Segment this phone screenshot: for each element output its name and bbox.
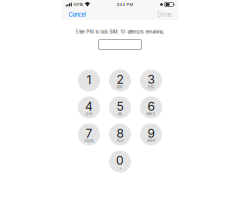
button[interactable]: 9 [140,123,162,145]
staticText: 4 [85,99,93,113]
staticText: JKL [117,112,123,116]
staticText: + [119,166,121,170]
staticText: 6 [147,99,154,113]
staticText: 0 [116,153,124,167]
button[interactable]: Cancel [64,9,89,20]
staticText: GHI [85,112,92,116]
staticText: 5 [116,99,123,113]
button[interactable]: 8 [109,123,131,145]
staticText: PQRS [84,139,93,143]
button[interactable]: 4 [78,96,100,118]
staticText: Cancel [68,11,85,18]
button[interactable]: 1 [78,69,100,91]
staticText: WXYZ [146,139,155,143]
staticText: 7 [85,126,92,140]
button[interactable]: 6 [140,96,162,118]
staticText: TUV [116,139,123,143]
staticText: 3:44 PM [117,2,134,7]
staticText: 9 [147,126,154,140]
staticText: Done [157,11,171,18]
button[interactable]: 0 [109,150,131,172]
staticText: ABC [116,85,123,89]
button[interactable]: 3 [140,69,162,91]
staticText: MNO [146,112,155,116]
staticText: 2 [116,72,123,86]
button[interactable]: 7 [78,123,100,145]
button[interactable]: 2 [109,69,131,91]
button[interactable]: 5 [109,96,131,118]
staticText: Airtel [73,2,83,7]
staticText: 8 [116,126,123,140]
staticText: DEF [147,85,154,89]
staticText: Enter PIN to lock SIM. 10 attempts remai… [75,29,164,34]
staticText: 1 [86,73,91,87]
staticText: 3 [147,72,154,86]
button[interactable]: Done [153,9,175,20]
